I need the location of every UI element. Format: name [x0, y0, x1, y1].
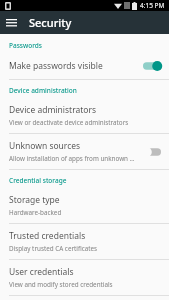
button[interactable]: Device administrators [0, 98, 169, 133]
button[interactable]: Trusted credentials [0, 224, 169, 259]
staticText: Security [29, 15, 72, 30]
staticText: Hardware-backed [9, 208, 62, 217]
staticText: Trusted credentials [9, 230, 86, 242]
staticText: Storage type [9, 194, 60, 206]
staticText: View and modify stored credentials [9, 280, 113, 289]
staticText: Passwords [9, 41, 43, 50]
staticText: Make passwords visible [9, 60, 103, 72]
button[interactable]: Toggle off [141, 145, 163, 159]
staticText: Device administration [9, 86, 77, 95]
staticText: Device administrators [9, 104, 97, 116]
button[interactable]: Toggle on [141, 59, 163, 73]
staticText: Credential storage [9, 176, 67, 185]
button[interactable]: Make passwords visible [0, 53, 169, 79]
button[interactable]: User credentials [0, 260, 169, 295]
staticText: Unknown sources [9, 140, 81, 152]
button[interactable]: Open navigation menu [0, 12, 22, 34]
staticText: User credentials [9, 266, 74, 278]
staticText: View or deactivate device administrators [9, 118, 129, 127]
button[interactable]: Unknown sources [0, 134, 169, 169]
staticText: Display trusted CA certificates [9, 244, 98, 253]
staticText: 4:15 PM [140, 1, 165, 10]
staticText: Allow installation of apps from unknown … [9, 154, 137, 163]
button[interactable]: Storage type [0, 188, 169, 223]
